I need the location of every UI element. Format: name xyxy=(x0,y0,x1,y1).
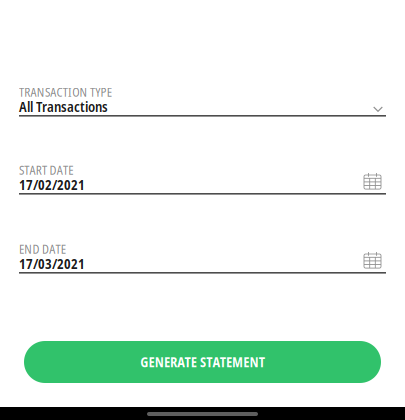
staticText: GENERATE STATEMENT xyxy=(140,353,265,371)
staticText: START DATE xyxy=(19,162,73,178)
staticText: 17/03/2021 xyxy=(19,255,85,273)
button[interactable]: Pick start date xyxy=(363,172,383,190)
button[interactable]: Choose transaction type xyxy=(373,106,383,112)
staticText: 17/02/2021 xyxy=(19,176,85,194)
button[interactable]: TRANSACTION TYPE xyxy=(19,87,386,117)
staticText: All Transactions xyxy=(19,97,108,116)
button[interactable]: Pick end date xyxy=(363,251,383,269)
button[interactable]: END DATE xyxy=(19,244,386,274)
staticText: END DATE xyxy=(19,241,66,257)
staticText: TRANSACTION TYPE xyxy=(19,84,112,100)
button[interactable]: START DATE xyxy=(19,165,386,195)
button[interactable]: GENERATE STATEMENT xyxy=(24,341,381,383)
